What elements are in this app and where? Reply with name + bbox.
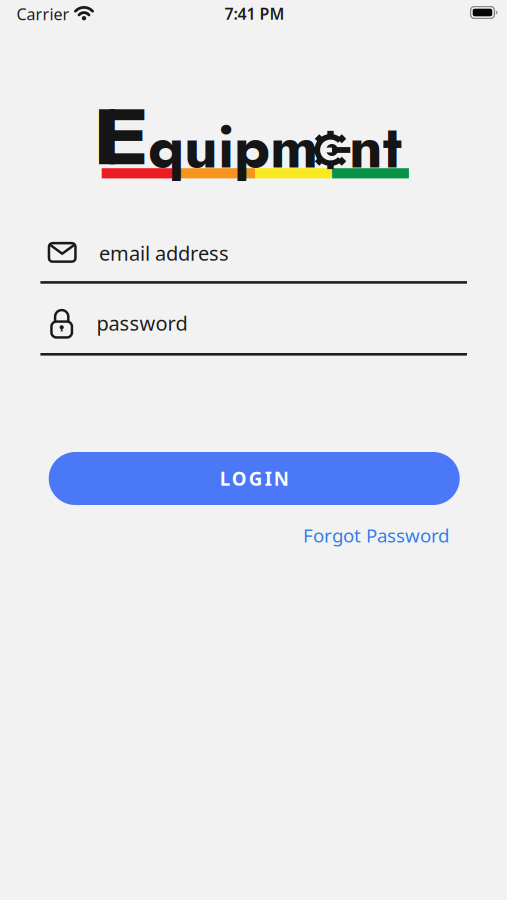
- staticText: E: [97, 80, 144, 194]
- staticText: nt: [349, 105, 402, 189]
- staticText: L O G I N: [220, 466, 289, 491]
- staticText: quipm: [148, 105, 318, 189]
- staticText: Carrier: [16, 3, 69, 25]
- button[interactable]: Forgot Password: [303, 523, 449, 548]
- button[interactable]: L O G I N: [49, 452, 460, 505]
- staticText: 7:41 PM: [224, 3, 284, 24]
- staticText: Forgot Password: [303, 523, 449, 548]
- staticText: email address: [99, 240, 229, 266]
- button[interactable]: password: [0, 289, 507, 361]
- button[interactable]: email address: [0, 218, 507, 290]
- staticText: password: [96, 310, 187, 336]
